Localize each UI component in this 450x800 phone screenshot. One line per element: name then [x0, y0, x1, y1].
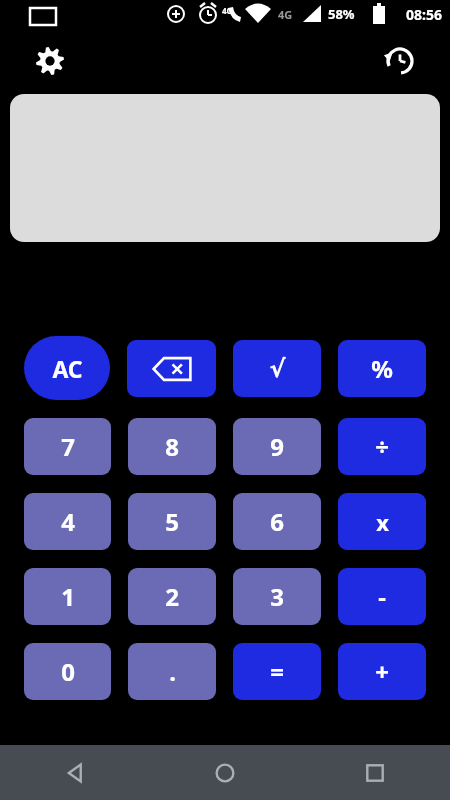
button[interactable]: [10, 94, 440, 242]
button[interactable]: 1: [24, 568, 111, 625]
button[interactable]: x: [338, 493, 426, 550]
staticText: ÷: [375, 430, 389, 463]
staticText: 3: [270, 580, 284, 613]
staticText: 4G: [278, 7, 293, 22]
button[interactable]: ÷: [338, 418, 426, 475]
staticText: 9: [270, 430, 284, 463]
staticText: 0: [61, 655, 75, 688]
button[interactable]: Home: [150, 745, 300, 800]
staticText: 1: [61, 580, 75, 613]
staticText: 6: [270, 505, 284, 538]
button[interactable]: Settings: [28, 39, 72, 83]
staticText: 58%: [328, 5, 355, 23]
staticText: =: [270, 655, 284, 688]
button[interactable]: 5: [128, 493, 216, 550]
staticText: 08:56: [406, 5, 442, 24]
staticText: x: [376, 507, 389, 537]
staticText: AC: [52, 353, 83, 384]
button[interactable]: =: [233, 643, 321, 700]
button[interactable]: 7: [24, 418, 111, 475]
button[interactable]: Back: [0, 745, 150, 800]
staticText: 4: [61, 505, 75, 538]
staticText: √: [269, 355, 286, 383]
button[interactable]: 3: [233, 568, 321, 625]
staticText: +: [375, 655, 389, 688]
button[interactable]: -: [338, 568, 426, 625]
button[interactable]: 6: [233, 493, 321, 550]
button[interactable]: %: [338, 340, 426, 397]
button[interactable]: √: [233, 340, 321, 397]
staticText: 5: [165, 505, 179, 538]
button[interactable]: 8: [128, 418, 216, 475]
staticText: .: [169, 655, 176, 688]
button[interactable]: AC: [24, 336, 110, 400]
staticText: 8: [165, 430, 179, 463]
button[interactable]: History: [378, 39, 422, 83]
button[interactable]: Recents: [300, 745, 450, 800]
staticText: 4G: [222, 5, 233, 16]
button[interactable]: +: [338, 643, 426, 700]
staticText: -: [378, 580, 386, 613]
button[interactable]: .: [128, 643, 216, 700]
staticText: %: [371, 352, 393, 385]
staticText: 2: [165, 580, 179, 613]
button[interactable]: 4: [24, 493, 111, 550]
button[interactable]: 0: [24, 643, 111, 700]
button[interactable]: 9: [233, 418, 321, 475]
button[interactable]: 2: [128, 568, 216, 625]
button[interactable]: Backspace: [127, 340, 216, 397]
staticText: 7: [61, 430, 75, 463]
